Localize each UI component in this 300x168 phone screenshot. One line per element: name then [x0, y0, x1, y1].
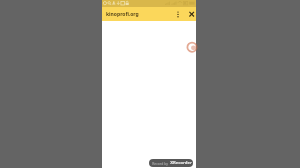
button[interactable]: Close: [185, 8, 198, 21]
staticText: XRecorder: [170, 160, 192, 166]
staticText: kinoprofi.org: [106, 11, 139, 18]
button[interactable]: More options: [172, 8, 184, 20]
staticText: Record by: [152, 161, 168, 166]
button[interactable]: kinoprofi.org: [102, 7, 170, 21]
